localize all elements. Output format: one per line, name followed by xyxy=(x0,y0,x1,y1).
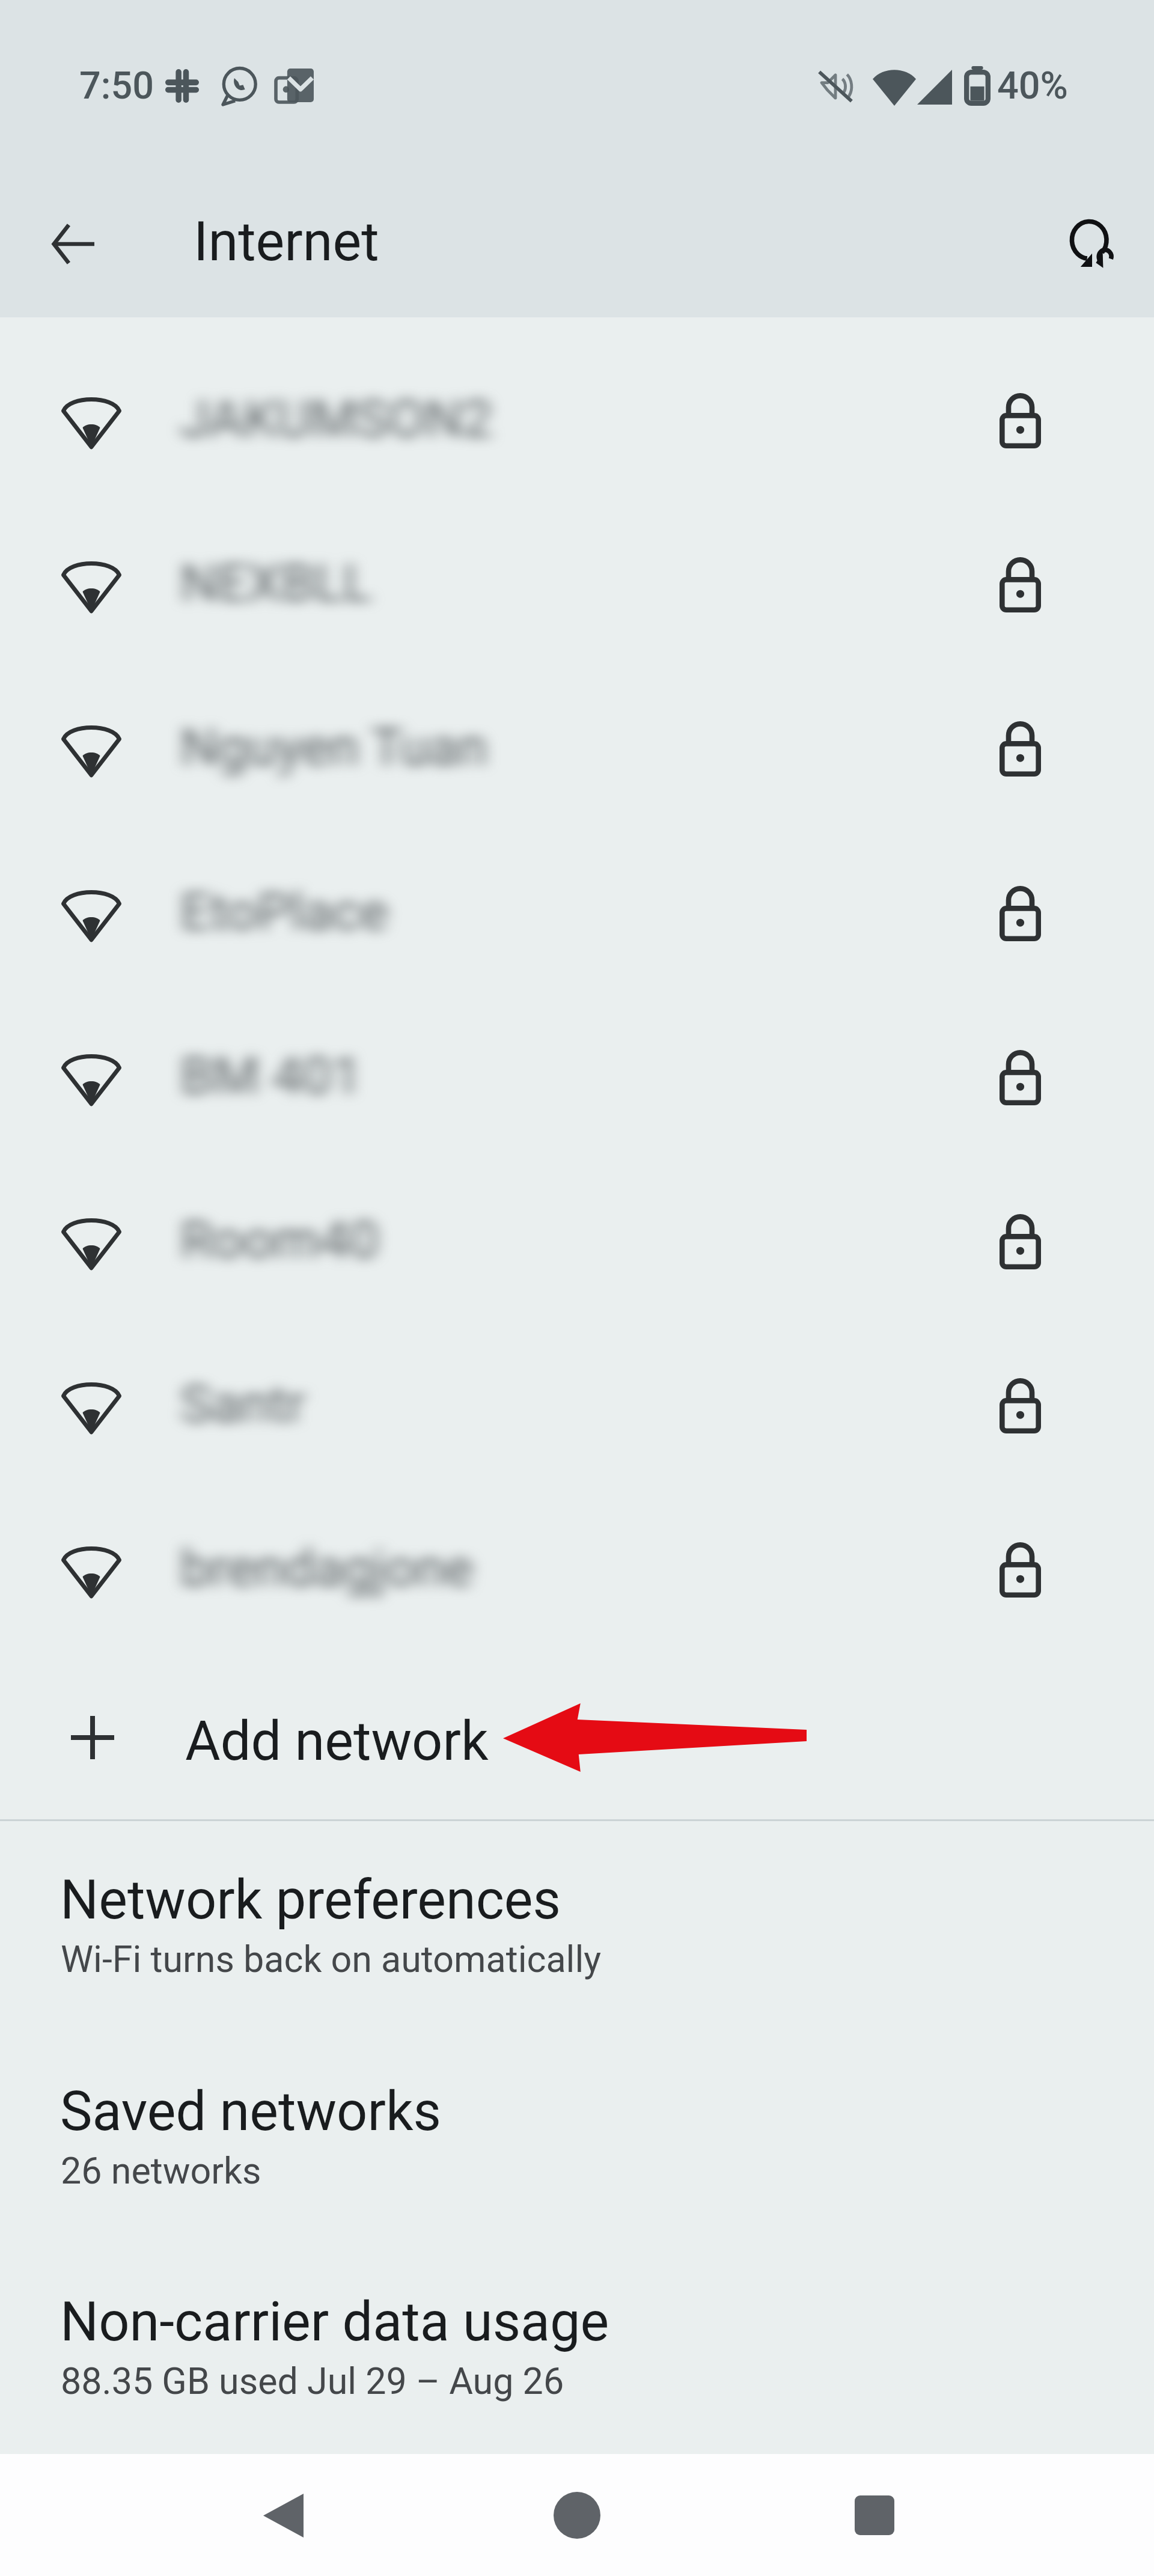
button[interactable]: EtoPlace xyxy=(0,831,1154,997)
staticText: Network preferences xyxy=(60,1869,561,1932)
staticText: NEXBLL xyxy=(180,552,371,614)
button[interactable]: Room40 xyxy=(0,1159,1154,1325)
staticText: brendagjone xyxy=(180,1537,474,1599)
staticText: Non-carrier data usage xyxy=(60,2291,609,2354)
button[interactable]: Back xyxy=(238,2470,328,2560)
button[interactable]: BM 401 xyxy=(0,995,1154,1161)
staticText: Saved networks xyxy=(60,2080,441,2143)
staticText: Nguyen Tuan xyxy=(180,716,487,778)
button[interactable]: Non-carrier data usage xyxy=(0,2242,1154,2452)
button[interactable]: Add network xyxy=(0,1655,1154,1821)
button[interactable]: Nguyen Tuan xyxy=(0,666,1154,832)
button[interactable]: NEXBLL xyxy=(0,502,1154,668)
staticText: Room40 xyxy=(180,1209,379,1271)
button[interactable]: Santr xyxy=(0,1323,1154,1489)
staticText: Add network xyxy=(185,1710,489,1773)
button[interactable]: brendagjone xyxy=(0,1487,1154,1653)
button[interactable]: Recent apps xyxy=(829,2470,920,2560)
staticText: 7:50 xyxy=(79,64,154,108)
button[interactable]: Saved networks xyxy=(0,2031,1154,2242)
staticText: BM 401 xyxy=(180,1045,362,1106)
button[interactable]: Network preferences xyxy=(0,1820,1154,2031)
button[interactable]: Refresh xyxy=(1053,206,1131,284)
staticText: 26 networks xyxy=(61,2149,261,2192)
button[interactable]: Home xyxy=(532,2470,622,2560)
staticText: JAKUMSON2 xyxy=(180,388,493,450)
staticText: 40% xyxy=(997,64,1069,108)
button[interactable]: Navigate up xyxy=(34,205,112,283)
staticText: Wi-Fi turns back on automatically xyxy=(61,1938,602,1980)
button[interactable]: JAKUMSON2 xyxy=(0,338,1154,504)
staticText: EtoPlace xyxy=(180,881,388,942)
staticText: Santr xyxy=(180,1373,305,1435)
staticText: 88.35 GB used Jul 29 – Aug 26 xyxy=(61,2360,564,2402)
staticText: Internet xyxy=(194,210,379,273)
